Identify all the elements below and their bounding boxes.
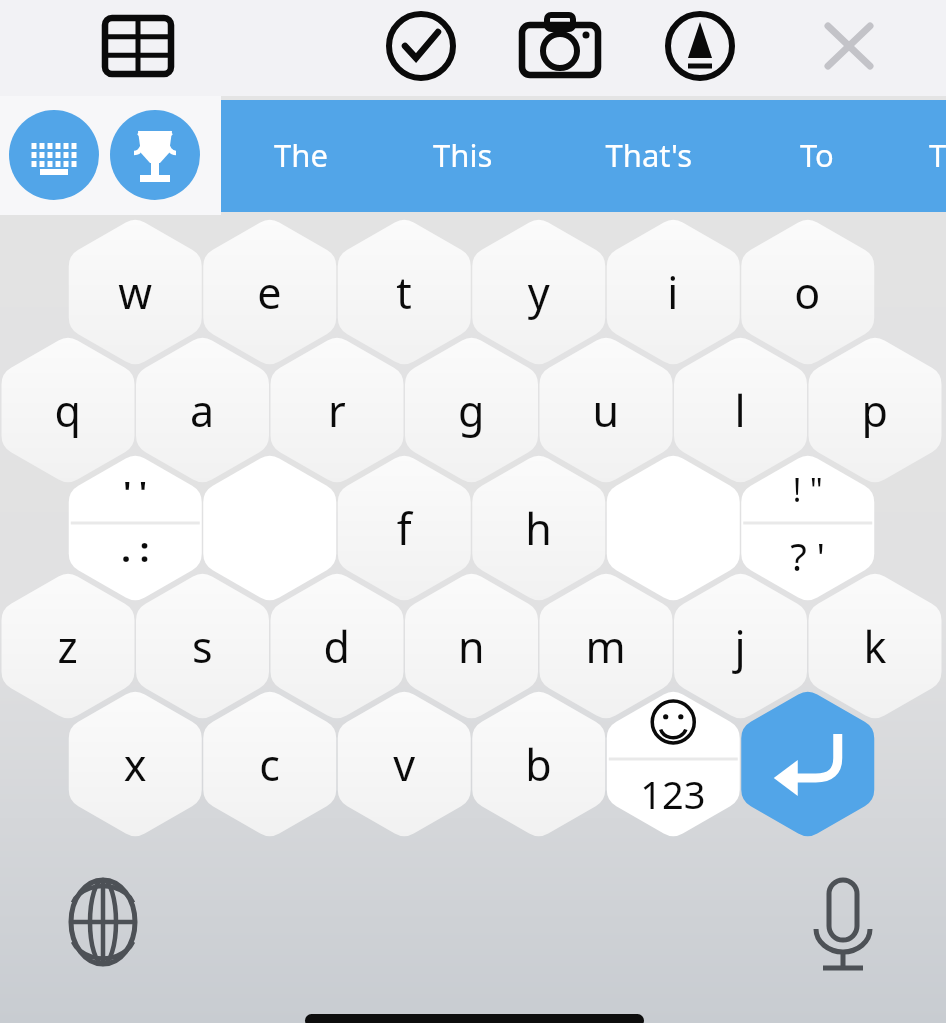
button[interactable]: n [405, 571, 538, 721]
button[interactable]: Change language [55, 874, 151, 970]
button[interactable]: g [405, 335, 538, 485]
button[interactable]: a [136, 335, 269, 485]
button[interactable]: Close [807, 4, 891, 90]
button[interactable]: Camera [518, 4, 602, 90]
button[interactable]: q [2, 335, 135, 485]
button[interactable]: m [540, 571, 673, 721]
button[interactable]: x [69, 689, 202, 839]
button[interactable]: f [338, 453, 471, 603]
button[interactable]: k [809, 571, 942, 721]
button[interactable]: Keyboard layouts [8, 109, 100, 201]
button[interactable]: i [607, 217, 740, 367]
button[interactable]: s [136, 571, 269, 721]
button[interactable]: o [741, 217, 874, 367]
button[interactable]: p [809, 335, 942, 485]
button[interactable]: b [472, 689, 605, 839]
button[interactable]: Confirm [379, 4, 463, 90]
button[interactable]: apostrophe and period [69, 453, 202, 603]
button[interactable]: Enter [741, 689, 874, 839]
button[interactable]: space [607, 453, 740, 603]
button[interactable]: v [338, 689, 471, 839]
button[interactable]: Voice input [795, 874, 891, 970]
button[interactable]: d [271, 571, 404, 721]
button[interactable]: This [391, 100, 535, 212]
button[interactable]: u [540, 335, 673, 485]
button[interactable]: w [69, 217, 202, 367]
button[interactable]: t [338, 217, 471, 367]
button[interactable]: h [472, 453, 605, 603]
button[interactable]: exclamation and question [741, 453, 874, 603]
button[interactable]: Table [96, 4, 180, 90]
button[interactable]: e [203, 217, 336, 367]
button[interactable]: l [674, 335, 807, 485]
button[interactable]: To [745, 100, 889, 212]
button[interactable]: y [472, 217, 605, 367]
button[interactable]: That's [577, 100, 721, 212]
button[interactable]: z [2, 571, 135, 721]
button[interactable]: r [271, 335, 404, 485]
button[interactable]: space [203, 453, 336, 603]
button[interactable]: The [229, 100, 373, 212]
button[interactable]: Achievements [109, 109, 201, 201]
button[interactable]: c [203, 689, 336, 839]
button[interactable]: j [674, 571, 807, 721]
button[interactable]: emoji and numbers [607, 689, 740, 839]
button[interactable]: Draw [658, 4, 742, 90]
